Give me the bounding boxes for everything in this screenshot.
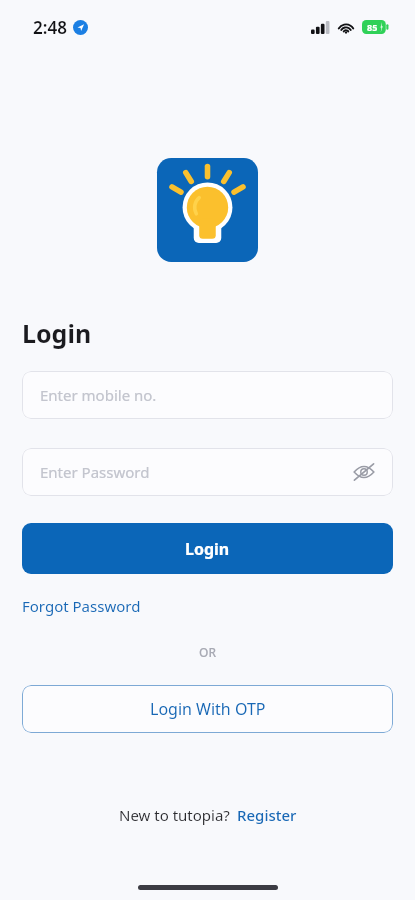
button[interactable]: Show password	[351, 459, 377, 485]
staticText: Login	[185, 538, 230, 560]
staticText: New to tutopia?	[119, 805, 230, 825]
staticText: OR	[22, 644, 393, 660]
staticText: Login With OTP	[150, 698, 266, 720]
staticText: 85	[367, 21, 378, 33]
button[interactable]: Enter mobile no.	[22, 371, 393, 419]
button[interactable]: Login	[22, 523, 393, 574]
staticText: Login	[22, 316, 92, 350]
staticText: Register	[237, 805, 297, 825]
staticText: Enter mobile no.	[40, 385, 157, 405]
staticText: 2:48	[33, 16, 67, 39]
button[interactable]: Login With OTP	[22, 685, 393, 733]
button[interactable]: Register	[237, 805, 297, 825]
button[interactable]: Enter Password	[22, 448, 393, 496]
staticText: Forgot Password	[22, 596, 141, 616]
staticText: Enter Password	[40, 462, 150, 482]
other: Tutopia logo	[157, 158, 258, 262]
button[interactable]: Forgot Password	[22, 596, 141, 616]
